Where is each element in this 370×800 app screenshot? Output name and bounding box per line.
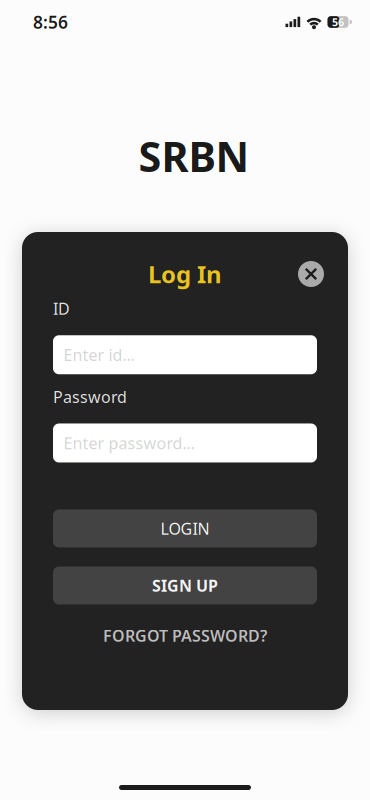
staticText: Enter id...	[63, 344, 134, 365]
staticText: 8:56	[33, 10, 68, 33]
staticText: SIGN UP	[152, 575, 218, 596]
staticText: 56	[332, 15, 344, 29]
staticText: Enter password...	[63, 432, 194, 454]
button[interactable]: SIGN UP	[53, 566, 317, 604]
staticText: Password	[53, 386, 127, 407]
staticText: SRBN	[138, 129, 249, 183]
button[interactable]: LOGIN	[53, 509, 317, 547]
staticText: Log In	[148, 258, 222, 290]
button[interactable]: Close	[298, 261, 324, 287]
staticText: ID	[53, 298, 70, 319]
staticText: LOGIN	[160, 518, 209, 539]
button[interactable]: FORGOT PASSWORD?	[53, 623, 317, 647]
staticText: FORGOT PASSWORD?	[103, 625, 267, 646]
